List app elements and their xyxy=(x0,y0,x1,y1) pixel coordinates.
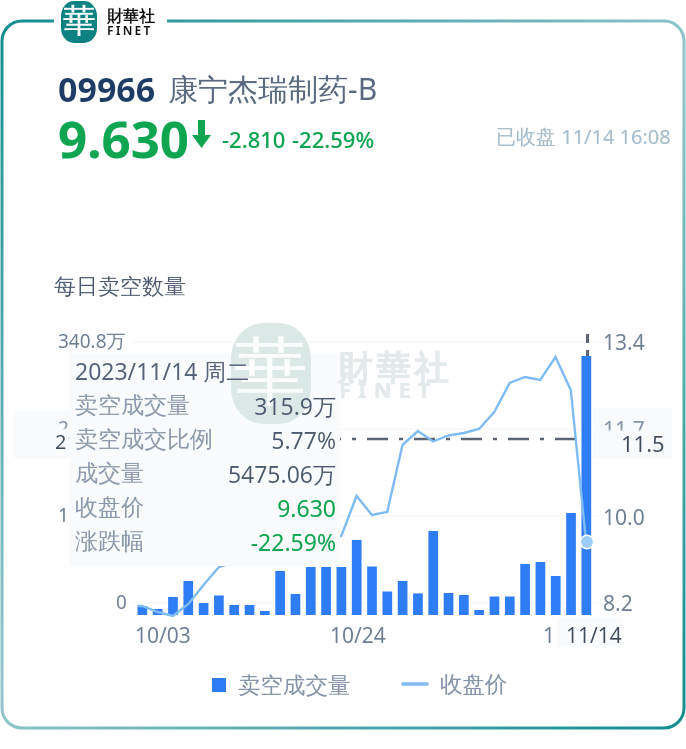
staticText: 每日卖空数量 xyxy=(54,273,186,301)
staticText: 227.2万 xyxy=(58,415,126,441)
button[interactable]: 卖空成交量 xyxy=(212,671,351,699)
staticText: 113.6万 xyxy=(58,502,126,528)
staticText: 0 xyxy=(116,589,127,615)
staticText: 收盘价 xyxy=(75,493,144,522)
staticText: FINET xyxy=(107,22,153,38)
staticText: 2023/11/14 周二 xyxy=(75,355,250,386)
staticText: 11/14 xyxy=(566,621,622,650)
staticText: 財華社 xyxy=(107,7,155,27)
staticText: 213.3万 xyxy=(55,428,127,455)
staticText: 11/07 xyxy=(543,621,599,650)
staticText: 340.8万 xyxy=(58,328,126,354)
staticText: 09966 xyxy=(58,66,156,112)
staticText: -22.59% xyxy=(292,124,375,154)
staticText: 成交量 xyxy=(75,459,144,488)
staticText: 華 xyxy=(63,0,96,42)
staticText: 11.7 xyxy=(603,415,645,444)
staticText: -22.59% xyxy=(144,526,336,557)
staticText: FINET xyxy=(339,374,438,404)
staticText: 涨跌幅 xyxy=(75,527,144,556)
staticText: 315.9万 xyxy=(190,390,336,421)
staticText: 10/03 xyxy=(135,621,191,650)
staticText: -2.810 xyxy=(222,124,286,154)
staticText: 10.0 xyxy=(603,503,645,532)
staticText: 卖空成交比例 xyxy=(75,425,213,454)
staticText: 10/24 xyxy=(330,621,386,650)
staticText: 卖空成交量 xyxy=(75,391,190,420)
staticText: 康宁杰瑞制药-B xyxy=(168,68,378,109)
staticText: 5.77% xyxy=(213,424,336,455)
staticText: 卖空成交量 xyxy=(238,671,351,699)
staticText: 收盘价 xyxy=(440,670,508,698)
staticText: 9.630 xyxy=(58,103,190,172)
staticText: 已收盘 11/14 16:08 xyxy=(496,123,671,150)
staticText: 13.4 xyxy=(603,328,645,357)
staticText: 華 xyxy=(234,326,308,419)
staticText: 11.5 xyxy=(621,428,665,458)
button[interactable]: 收盘价 xyxy=(403,670,508,698)
staticText: 財華社 xyxy=(336,347,450,390)
staticText: 8.2 xyxy=(603,589,633,618)
staticText: 9.630 xyxy=(144,492,336,523)
staticText: 5475.06万 xyxy=(144,458,336,489)
